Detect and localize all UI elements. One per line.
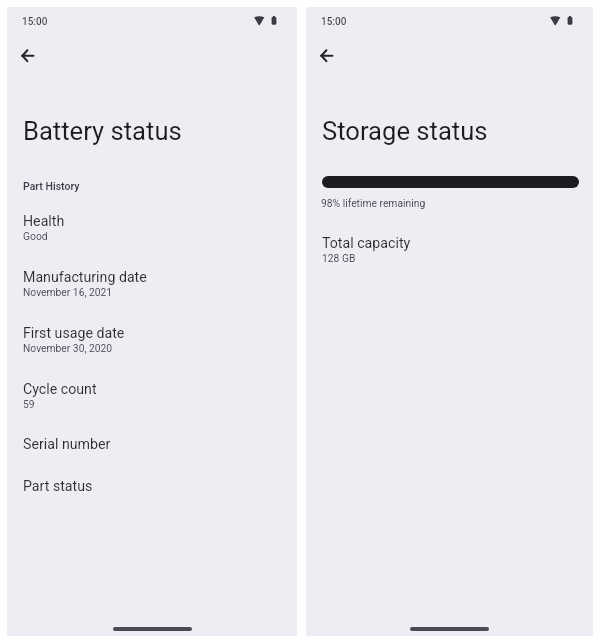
staticText: Part History xyxy=(23,180,80,192)
staticText: Manufacturing date xyxy=(23,269,147,286)
button[interactable]: First usage date xyxy=(7,325,297,354)
button[interactable]: Manufacturing date xyxy=(7,269,297,298)
staticText: Storage status xyxy=(322,116,488,146)
other: Wi-Fi and battery status xyxy=(550,16,580,26)
button[interactable]: Back xyxy=(11,39,44,72)
other: Wi-Fi and battery status xyxy=(254,16,284,26)
staticText: Health xyxy=(23,213,65,230)
staticText: Serial number xyxy=(23,436,111,453)
staticText: 15:00 xyxy=(22,16,48,28)
staticText: 128 GB xyxy=(322,252,356,264)
staticText: November 30, 2020 xyxy=(23,342,113,354)
staticText: Part status xyxy=(23,478,93,495)
staticText: 98% lifetime remaining xyxy=(321,197,426,209)
button[interactable]: Health xyxy=(7,213,297,242)
button[interactable]: Serial number xyxy=(7,436,297,453)
staticText: Battery status xyxy=(23,116,182,146)
button[interactable]: Cycle count xyxy=(7,381,297,410)
staticText: First usage date xyxy=(23,325,125,342)
staticText: 15:00 xyxy=(321,16,347,28)
staticText: November 16, 2021 xyxy=(23,286,113,298)
staticText: 59 xyxy=(23,398,35,410)
button[interactable]: Back xyxy=(310,39,343,72)
button[interactable]: Part status xyxy=(7,478,297,495)
staticText: Cycle count xyxy=(23,381,97,398)
staticText: Good xyxy=(23,230,48,242)
button[interactable]: Total capacity xyxy=(306,235,593,264)
staticText: Total capacity xyxy=(322,235,411,252)
